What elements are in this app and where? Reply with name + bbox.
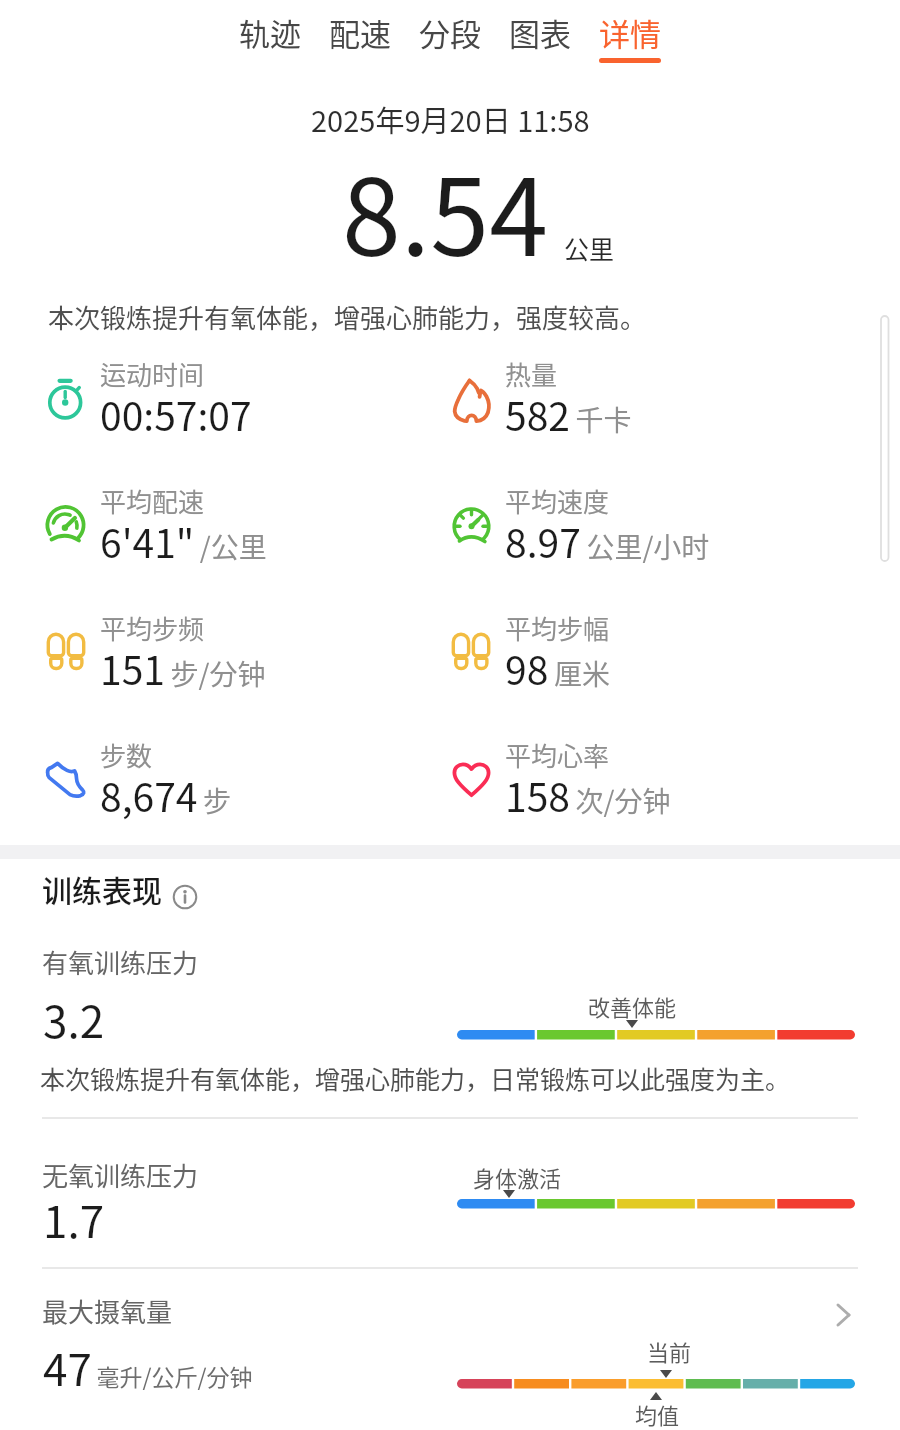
staticText: 平均步幅 <box>505 609 610 647</box>
staticText: 1.7 <box>43 1187 105 1251</box>
button[interactable]: 图表 <box>509 10 571 63</box>
staticText: 热量 <box>505 355 558 393</box>
staticText: 本次锻炼提升有氧体能，增强心肺能力，强度较高。 <box>48 298 647 336</box>
staticText: 582 千卡 <box>505 386 632 442</box>
staticText: 运动时间 <box>100 355 205 393</box>
staticText: 平均心率 <box>505 736 610 774</box>
staticText: 配速 <box>329 10 391 55</box>
staticText: 公里 <box>564 230 615 266</box>
staticText: 身体激活 <box>473 1161 562 1193</box>
staticText: 有氧训练压力 <box>42 943 199 981</box>
staticText: 训练表现 <box>42 867 162 910</box>
staticText: 8.54 <box>342 133 548 286</box>
staticText: 最大摄氧量 <box>42 1292 173 1330</box>
staticText: 本次锻炼提升有氧体能，增强心肺能力，日常锻炼可以此强度为主。 <box>40 1060 791 1096</box>
staticText: 分段 <box>419 10 481 55</box>
staticText: 8.97 公里/小时 <box>505 513 710 569</box>
staticText: 47 毫升/公斤/分钟 <box>43 1335 253 1399</box>
staticText: 无氧训练压力 <box>42 1156 199 1194</box>
staticText: 轨迹 <box>239 10 301 55</box>
staticText: 158 次/分钟 <box>505 767 671 823</box>
staticText: 98 厘米 <box>505 640 610 696</box>
staticText: 2025年9月20日 11:58 <box>311 98 590 140</box>
staticText: 8,674 步 <box>100 767 232 823</box>
staticText: 151 步/分钟 <box>100 640 266 696</box>
button[interactable]: 配速 <box>329 10 391 63</box>
staticText: 6'41" /公里 <box>100 513 267 569</box>
button[interactable] <box>172 884 198 910</box>
staticText: 00:57:07 <box>100 386 252 442</box>
button[interactable]: 轨迹 <box>239 10 301 63</box>
staticText: 平均速度 <box>505 482 610 520</box>
staticText: 图表 <box>509 10 571 55</box>
staticText: 当前 <box>647 1335 692 1367</box>
staticText: 平均配速 <box>100 482 205 520</box>
button[interactable] <box>40 1284 860 1414</box>
staticText: 详情 <box>599 10 661 55</box>
button[interactable]: 分段 <box>419 10 481 63</box>
staticText: 3.2 <box>43 987 105 1051</box>
staticText: 步数 <box>100 736 153 774</box>
staticText: 改善体能 <box>588 990 677 1022</box>
button[interactable]: 详情 <box>599 10 661 63</box>
staticText: 均值 <box>635 1398 680 1430</box>
staticText: 平均步频 <box>100 609 205 647</box>
